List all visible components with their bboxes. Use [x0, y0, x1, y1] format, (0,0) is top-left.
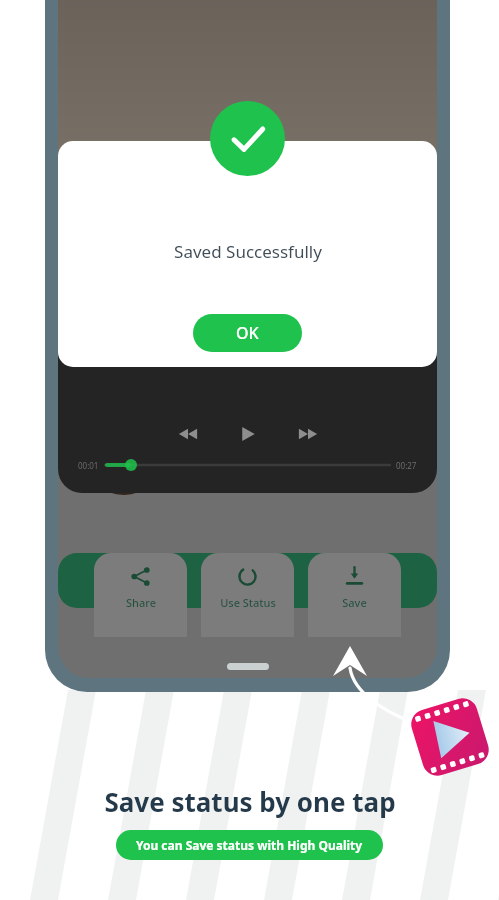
button[interactable]: Rewind: [170, 416, 206, 452]
staticText: 00:27: [396, 460, 417, 471]
staticText: Share: [126, 595, 156, 610]
button[interactable]: Save: [308, 553, 401, 637]
staticText: OK: [236, 322, 259, 344]
staticText: Save: [342, 595, 367, 610]
button[interactable]: Share: [94, 553, 187, 637]
button[interactable]: OK: [193, 314, 302, 352]
button[interactable]: Use Status: [201, 553, 294, 637]
button[interactable]: Play: [230, 416, 266, 452]
staticText: You can Save status with High Quality: [136, 837, 363, 853]
staticText: Save status by one tap: [104, 784, 396, 819]
staticText: Saved Successfully: [174, 240, 322, 263]
button[interactable]: Fast forward: [290, 416, 326, 452]
staticText: Use Status: [220, 595, 276, 610]
staticText: 00:01: [78, 460, 99, 471]
